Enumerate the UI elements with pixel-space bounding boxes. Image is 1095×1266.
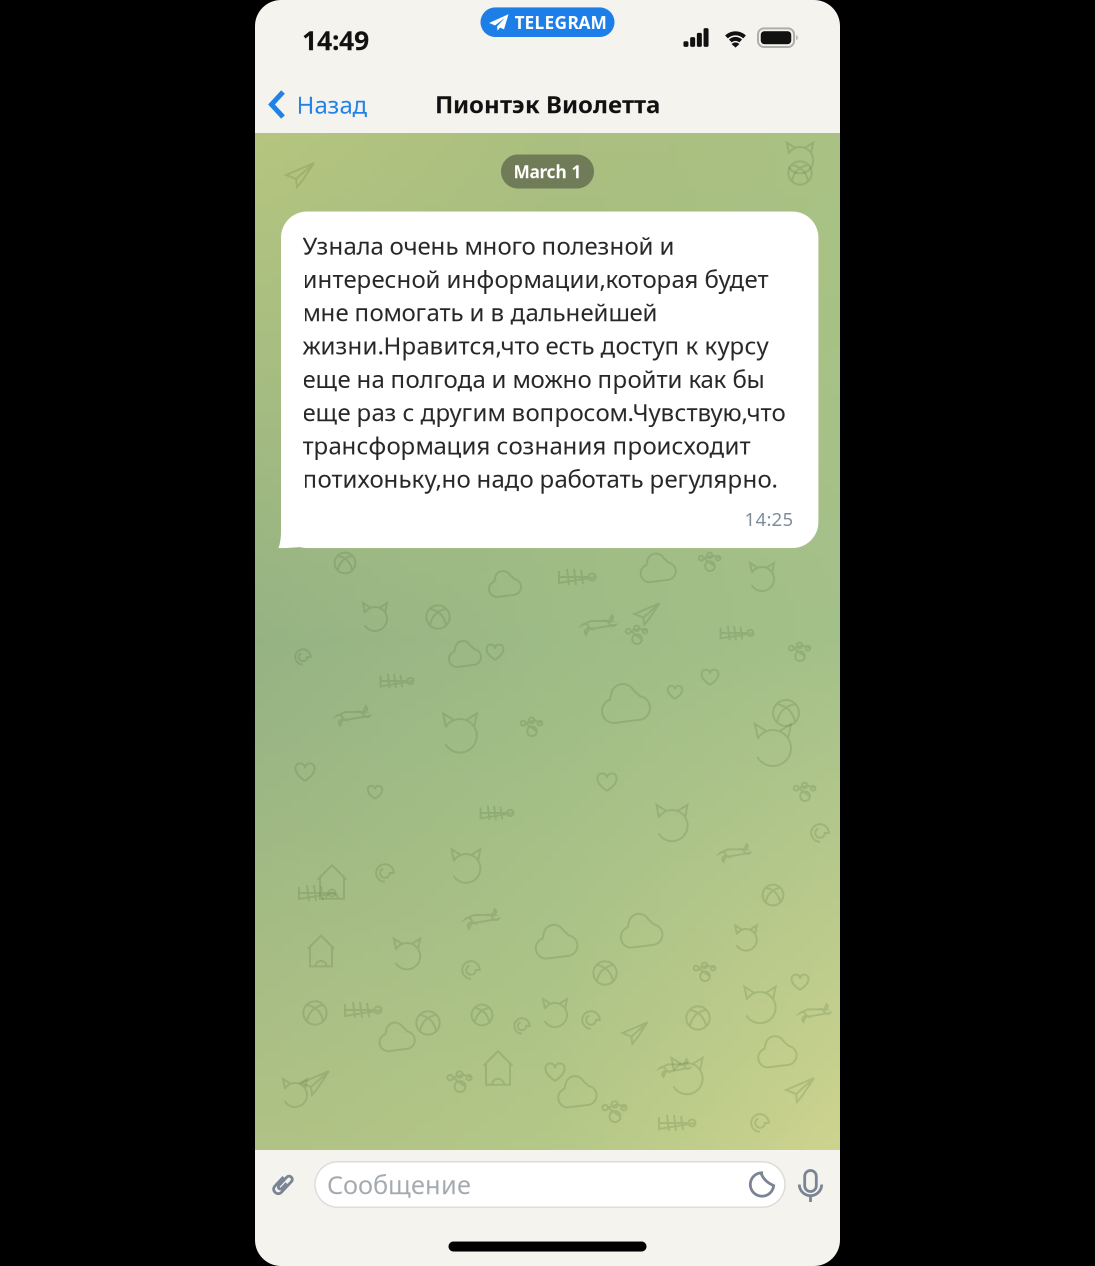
button[interactable] bbox=[276, 1170, 289, 1197]
staticText: Назад bbox=[296, 89, 367, 120]
button[interactable]: TELEGRAM bbox=[480, 7, 614, 37]
staticText: Сообщение bbox=[327, 1168, 471, 1201]
staticText: интересной информации,которая будет bbox=[302, 263, 768, 295]
staticText: 14:25 bbox=[744, 506, 793, 531]
staticText: мне помогать и в дальнейшей bbox=[302, 296, 657, 328]
button[interactable]: March 1 bbox=[501, 154, 594, 188]
staticText: TELEGRAM bbox=[514, 11, 606, 34]
staticText: еще раз с другим вопросом.Чувствую,что bbox=[302, 396, 785, 428]
staticText: Пионтэк Виолетта bbox=[435, 88, 660, 120]
button[interactable] bbox=[798, 1168, 823, 1202]
button[interactable]: Сообщение bbox=[315, 1162, 785, 1207]
staticText: Узнала очень много полезной и bbox=[302, 230, 674, 261]
button[interactable]: Назад bbox=[268, 89, 367, 120]
staticText: трансформация сознания происходит bbox=[302, 429, 750, 461]
staticText: 14:49 bbox=[302, 22, 369, 58]
staticText: March 1 bbox=[513, 160, 581, 183]
staticText: потихоньку,но надо работать регулярно. bbox=[302, 462, 777, 494]
staticText: еще на полгода и можно пройти как бы bbox=[302, 363, 764, 394]
staticText: жизни.Нравится,что есть доступ к курсу bbox=[302, 329, 768, 361]
